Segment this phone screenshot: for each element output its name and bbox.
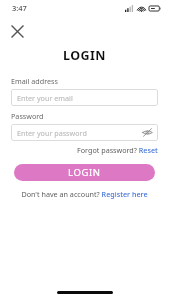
staticText: 3:47 [12,3,27,13]
button[interactable]: LOGIN [14,164,155,181]
staticText: LOGIN [68,166,101,179]
button[interactable]: Forgot password? Reset [77,145,158,155]
button[interactable]: Don't have an account? Register here [11,189,158,199]
button[interactable]: Close [6,20,28,42]
button[interactable]: Show password [141,126,154,139]
staticText: Password [11,111,44,121]
staticText: Enter your email [17,93,73,103]
staticText: Enter your password [17,128,87,138]
staticText: Forgot password? Reset [77,145,158,155]
staticText: Email address [11,76,58,86]
button[interactable]: Enter your password [11,124,158,141]
button[interactable]: Enter your email [11,89,158,106]
staticText: LOGIN [63,47,106,64]
staticText: Don't have an account? Register here [21,189,148,199]
